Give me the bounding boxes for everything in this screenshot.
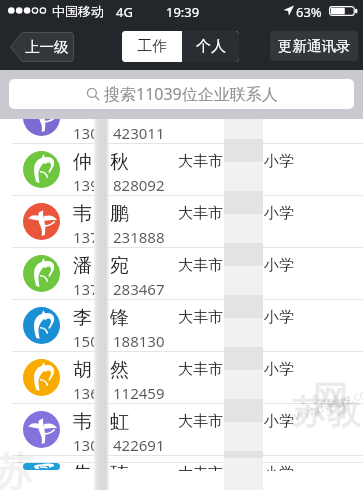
staticText: 130 [73, 435, 99, 455]
button[interactable]: 韦 [0, 404, 363, 456]
staticText: 大丰市 [178, 204, 223, 223]
staticText: 然 [110, 358, 129, 382]
staticText: 422691 [113, 435, 165, 455]
staticText: 虹 [110, 410, 129, 434]
staticText: 828092 [113, 175, 165, 195]
staticText: 231888 [113, 227, 165, 247]
button[interactable]: 个人 [182, 31, 239, 62]
button[interactable]: 朱 [0, 456, 363, 463]
staticText: 150 [73, 331, 99, 351]
staticText: 苏教 [292, 391, 360, 434]
staticText: 134 [73, 487, 99, 490]
staticText: 137 [73, 279, 99, 299]
button[interactable]: 更新通讯录 [270, 31, 358, 61]
staticText: 苏 [0, 447, 34, 490]
staticText: 小学 [264, 308, 294, 327]
button[interactable]: 130 [0, 119, 363, 144]
button[interactable]: 上一级 [10, 32, 74, 62]
staticText: 大丰市 [178, 360, 223, 379]
staticText: 小学 [264, 204, 294, 223]
staticText: 63% [296, 3, 322, 21]
staticText: 秋 [110, 150, 129, 174]
staticText: 大丰市 [178, 256, 223, 275]
button[interactable]: 仲 [0, 144, 363, 196]
staticText: 283467 [113, 279, 165, 299]
staticText: 130 [73, 123, 99, 143]
staticText: 小学 [264, 256, 294, 275]
staticText: 韦 [73, 410, 92, 434]
staticText: 宛 [110, 254, 129, 278]
staticText: 搜索11039位企业联系人 [104, 83, 278, 105]
staticText: 小学 [264, 360, 294, 379]
staticText: 大丰市 [178, 464, 223, 471]
staticText: 工作 [137, 37, 167, 56]
staticText: 锋 [110, 306, 129, 330]
staticText: 小学 [264, 152, 294, 171]
staticText: 大丰市 [178, 308, 223, 327]
button[interactable]: 韦 [0, 196, 363, 248]
staticText: 139 [73, 175, 99, 195]
button[interactable]: 工作 [122, 31, 182, 62]
staticText: 胡 [73, 358, 92, 382]
staticText: 136 [73, 383, 99, 403]
button[interactable]: 胡 [0, 352, 363, 404]
staticText: 更新通讯录 [278, 37, 351, 55]
staticText: 鹏 [110, 202, 129, 226]
button[interactable]: 搜索11039位企业联系人 [9, 79, 354, 109]
button[interactable]: 潘 [0, 248, 363, 300]
staticText: 188130 [113, 331, 165, 351]
staticText: 112459 [113, 383, 165, 403]
staticText: 137 [73, 227, 99, 247]
staticText: 大丰市 [178, 412, 223, 431]
button[interactable]: 李 [0, 300, 363, 352]
staticText: 韦 [73, 202, 92, 226]
staticText: 仲 [73, 150, 92, 174]
staticText: www.dtjs.js.cn [281, 384, 363, 428]
staticText: 琦 [110, 462, 129, 469]
staticText: 大丰市 [178, 152, 223, 171]
staticText: 423011 [113, 123, 165, 143]
staticText: 个人 [196, 37, 226, 56]
staticText: 李 [73, 306, 92, 330]
staticText: 网 [312, 377, 348, 422]
staticText: 潘 [73, 254, 92, 278]
staticText: 4G [116, 3, 133, 21]
staticText: 小学 [264, 412, 294, 431]
staticText: 朱 [73, 462, 92, 469]
staticText: 小学 [264, 464, 294, 471]
staticText: 上一级 [25, 38, 69, 56]
staticText: 19:39 [166, 3, 200, 21]
staticText: 中国移动 [52, 3, 104, 19]
